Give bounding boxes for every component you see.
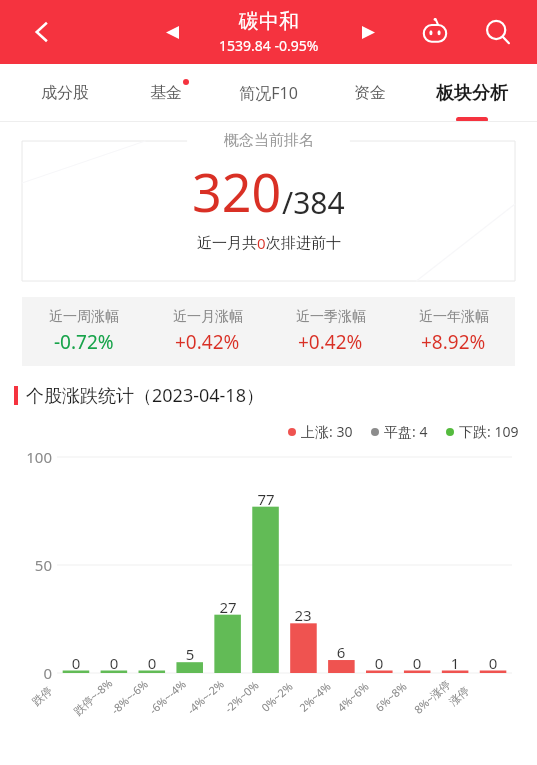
button[interactable]: 近一周涨幅 xyxy=(22,308,146,355)
staticText: 简况F10 xyxy=(239,82,298,104)
staticText: 碳中和 xyxy=(239,9,299,34)
staticText: +8.92% xyxy=(421,329,486,355)
button[interactable]: 简况F10 xyxy=(217,64,319,122)
staticText: /384 xyxy=(282,182,345,223)
button[interactable]: 成分股 xyxy=(14,64,115,122)
button[interactable]: 近一年涨幅 xyxy=(392,308,515,355)
button[interactable]: 基金 xyxy=(115,64,217,122)
staticText: 近一月涨幅 xyxy=(173,308,243,326)
staticText: 1 xyxy=(437,653,473,673)
staticText: 0 xyxy=(58,653,94,673)
button[interactable]: Search xyxy=(477,11,519,53)
staticText: 0 xyxy=(134,653,170,673)
staticText: +0.42% xyxy=(175,329,240,355)
staticText: 近一季涨幅 xyxy=(296,308,366,326)
staticText: 23 xyxy=(285,605,321,625)
staticText: 跌停 xyxy=(29,683,55,708)
staticText: 0%~2% xyxy=(258,678,296,715)
staticText: 77 xyxy=(248,489,284,509)
staticText: 下跌: 109 xyxy=(459,422,519,441)
staticText: 成分股 xyxy=(41,83,89,103)
staticText: 概念当前排名 xyxy=(224,131,314,150)
staticText: 2%~4% xyxy=(296,678,334,715)
staticText: 1539.84 -0.95% xyxy=(219,36,319,55)
button[interactable]: 近一季涨幅 xyxy=(269,308,392,355)
staticText: 0 xyxy=(475,653,511,673)
staticText: 50 xyxy=(10,555,52,575)
staticText: 平盘: 4 xyxy=(384,422,428,441)
staticText: 27 xyxy=(210,597,246,617)
staticText: 个股涨跌统计（2023-04-18） xyxy=(26,383,264,408)
staticText: 资金 xyxy=(354,83,386,103)
button[interactable]: Next xyxy=(351,15,385,49)
button[interactable]: 板块分析 xyxy=(421,64,523,122)
staticText: 近一周涨幅 xyxy=(49,308,119,326)
staticText: 跌停~-8% xyxy=(70,675,116,718)
staticText: 8%~涨停 xyxy=(411,676,453,717)
staticText: 基金 xyxy=(150,83,182,103)
staticText: 0 xyxy=(10,663,52,683)
staticText: 0 xyxy=(257,233,266,253)
staticText: 6 xyxy=(323,642,359,662)
button[interactable]: 资金 xyxy=(319,64,421,122)
staticText: 0 xyxy=(96,653,132,673)
staticText: 近一月共 xyxy=(197,234,257,253)
button[interactable]: 碳中和 xyxy=(219,9,319,55)
staticText: 0 xyxy=(399,653,435,673)
staticText: 上涨: 30 xyxy=(301,422,353,441)
staticText: 0 xyxy=(361,653,397,673)
staticText: +0.42% xyxy=(298,329,363,355)
staticText: 板块分析 xyxy=(436,82,508,105)
staticText: 涨停 xyxy=(446,683,472,708)
staticText: 6%~8% xyxy=(372,678,410,715)
staticText: -4%~-2% xyxy=(184,676,227,717)
button[interactable]: AI assistant xyxy=(415,12,455,52)
staticText: 近一年涨幅 xyxy=(419,308,489,326)
button[interactable]: Previous xyxy=(155,15,189,49)
staticText: 100 xyxy=(10,447,52,467)
staticText: 次排进前十 xyxy=(266,234,341,253)
staticText: 4%~6% xyxy=(334,678,372,715)
staticText: -0.72% xyxy=(54,329,114,355)
staticText: -2%~0% xyxy=(221,677,262,716)
button[interactable]: Back xyxy=(22,12,62,52)
staticText: -8%~-6% xyxy=(108,676,151,717)
staticText: 5 xyxy=(172,644,208,664)
button[interactable]: 近一月涨幅 xyxy=(146,308,269,355)
staticText: 320 xyxy=(192,156,282,227)
staticText: -6%~-4% xyxy=(146,676,189,717)
